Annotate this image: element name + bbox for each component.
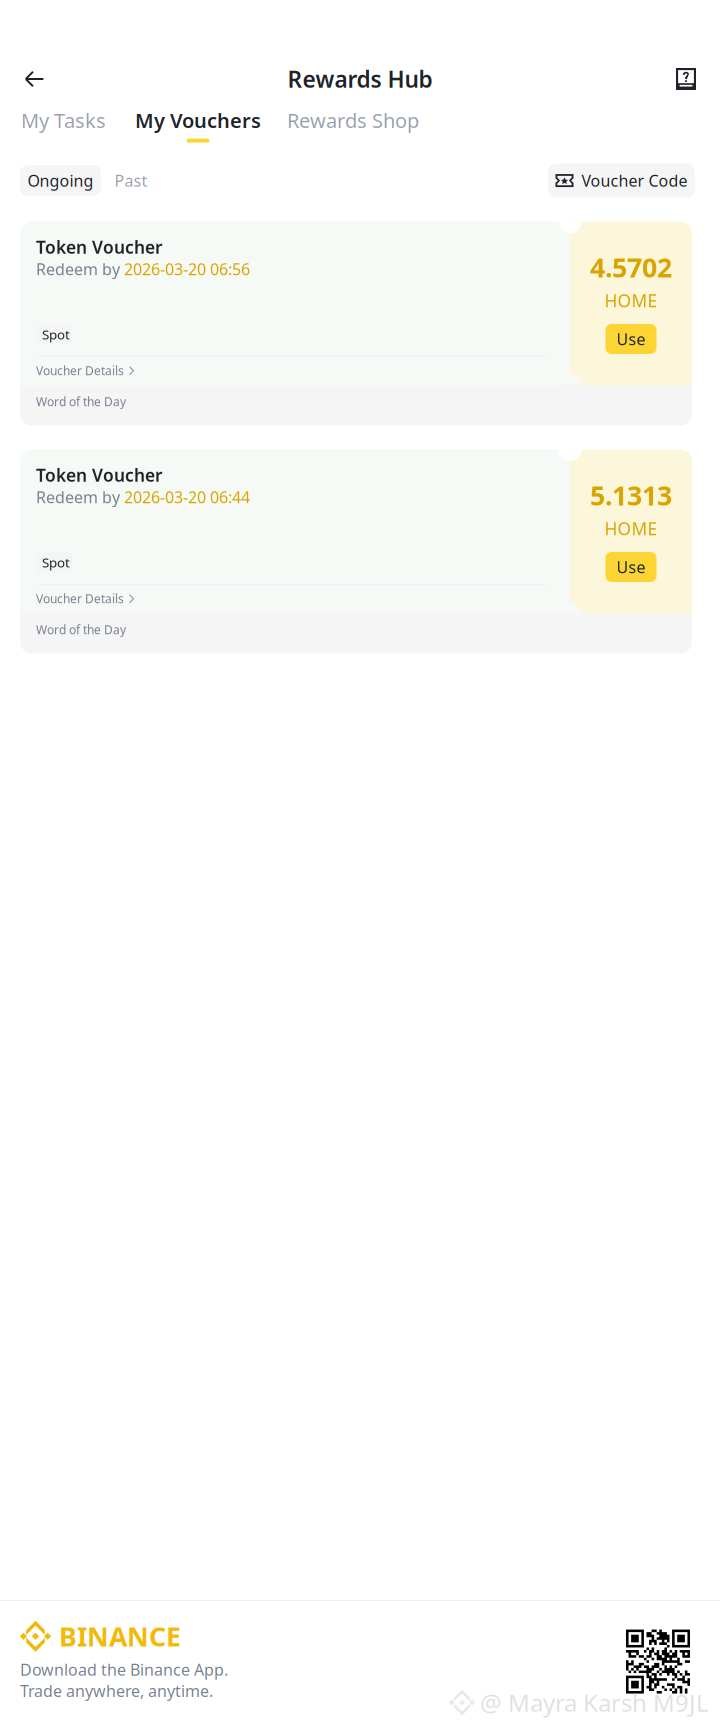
button[interactable]: Ongoing <box>20 165 101 196</box>
staticText: Rewards Hub <box>287 64 432 94</box>
staticText: BINANCE <box>59 1619 181 1654</box>
staticText: Rewards Shop <box>287 107 419 134</box>
staticText: 5.1313 <box>590 478 672 513</box>
staticText: 2026-03-20 06:44 <box>124 486 250 508</box>
staticText: Redeem by <box>36 486 124 508</box>
button[interactable]: Help <box>664 57 708 101</box>
button[interactable]: Voucher Details <box>36 363 548 379</box>
staticText: Voucher Details <box>36 591 124 607</box>
staticText: Word of the Day <box>36 394 126 409</box>
staticText: Past <box>114 170 147 191</box>
staticText: HOME <box>604 289 657 312</box>
staticText: Trade anywhere, anytime. <box>20 1680 213 1701</box>
staticText: 4.5702 <box>590 250 672 285</box>
button[interactable]: Use <box>605 552 656 582</box>
staticText: 2026-03-20 06:56 <box>124 258 250 280</box>
button[interactable]: Use <box>605 324 656 354</box>
staticText: HOME <box>604 517 657 540</box>
button[interactable]: My Vouchers <box>135 107 261 143</box>
staticText: Word of the Day <box>36 622 126 637</box>
button[interactable]: My Tasks <box>21 107 106 143</box>
staticText: Download the Binance App. <box>20 1659 228 1680</box>
staticText: Token Voucher <box>36 463 163 486</box>
staticText: Redeem by <box>36 258 124 280</box>
staticText: Voucher Code <box>581 170 687 191</box>
staticText: Spot <box>42 553 70 571</box>
button[interactable]: Back <box>12 57 56 101</box>
staticText: Voucher Details <box>36 363 124 379</box>
staticText: Spot <box>42 325 70 343</box>
button[interactable]: Voucher Details <box>36 591 548 607</box>
staticText: Use <box>616 556 645 578</box>
button[interactable]: Rewards Shop <box>287 107 419 143</box>
button[interactable]: Past <box>101 165 161 196</box>
staticText: Use <box>616 328 645 350</box>
staticText: Token Voucher <box>36 235 163 258</box>
staticText: My Vouchers <box>135 107 261 134</box>
staticText: @ Mayra Karsh M9JL <box>480 1687 709 1718</box>
staticText: My Tasks <box>21 107 106 134</box>
button[interactable]: Voucher Code <box>548 164 695 198</box>
staticText: Ongoing <box>27 170 93 191</box>
